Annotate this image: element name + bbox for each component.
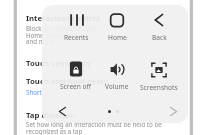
staticText: Set how long an interaction must be held… bbox=[26, 120, 162, 128]
button[interactable]: Home bbox=[96, 8, 138, 44]
staticText: Short bbox=[26, 88, 42, 96]
staticText: Screen off bbox=[60, 82, 92, 91]
staticText: Block accidental touches bbox=[26, 24, 98, 32]
staticText: Home screen swipe bbox=[26, 31, 83, 39]
staticText: recognized as a tap bbox=[26, 127, 83, 135]
button[interactable]: Previous page bbox=[53, 102, 71, 120]
staticText: Interaction control bbox=[26, 13, 100, 24]
button[interactable]: Next page bbox=[164, 102, 182, 120]
staticText: Volume bbox=[105, 82, 129, 91]
staticText: Back bbox=[152, 33, 167, 42]
staticText: Tap duration bbox=[26, 110, 76, 121]
button[interactable]: Screen off bbox=[55, 57, 97, 93]
button[interactable]: Back bbox=[138, 8, 180, 44]
staticText: Touch sensitivity bbox=[26, 58, 92, 69]
staticText: Touch and hold delay bbox=[26, 76, 108, 87]
staticText: Recents bbox=[64, 33, 89, 42]
button[interactable]: Recents bbox=[55, 8, 97, 44]
staticText: Home bbox=[108, 33, 127, 42]
staticText: and more bbox=[26, 37, 55, 45]
button[interactable]: Screenshots bbox=[138, 58, 180, 94]
staticText: Screenshots bbox=[140, 83, 178, 92]
button[interactable]: Volume bbox=[96, 57, 138, 93]
